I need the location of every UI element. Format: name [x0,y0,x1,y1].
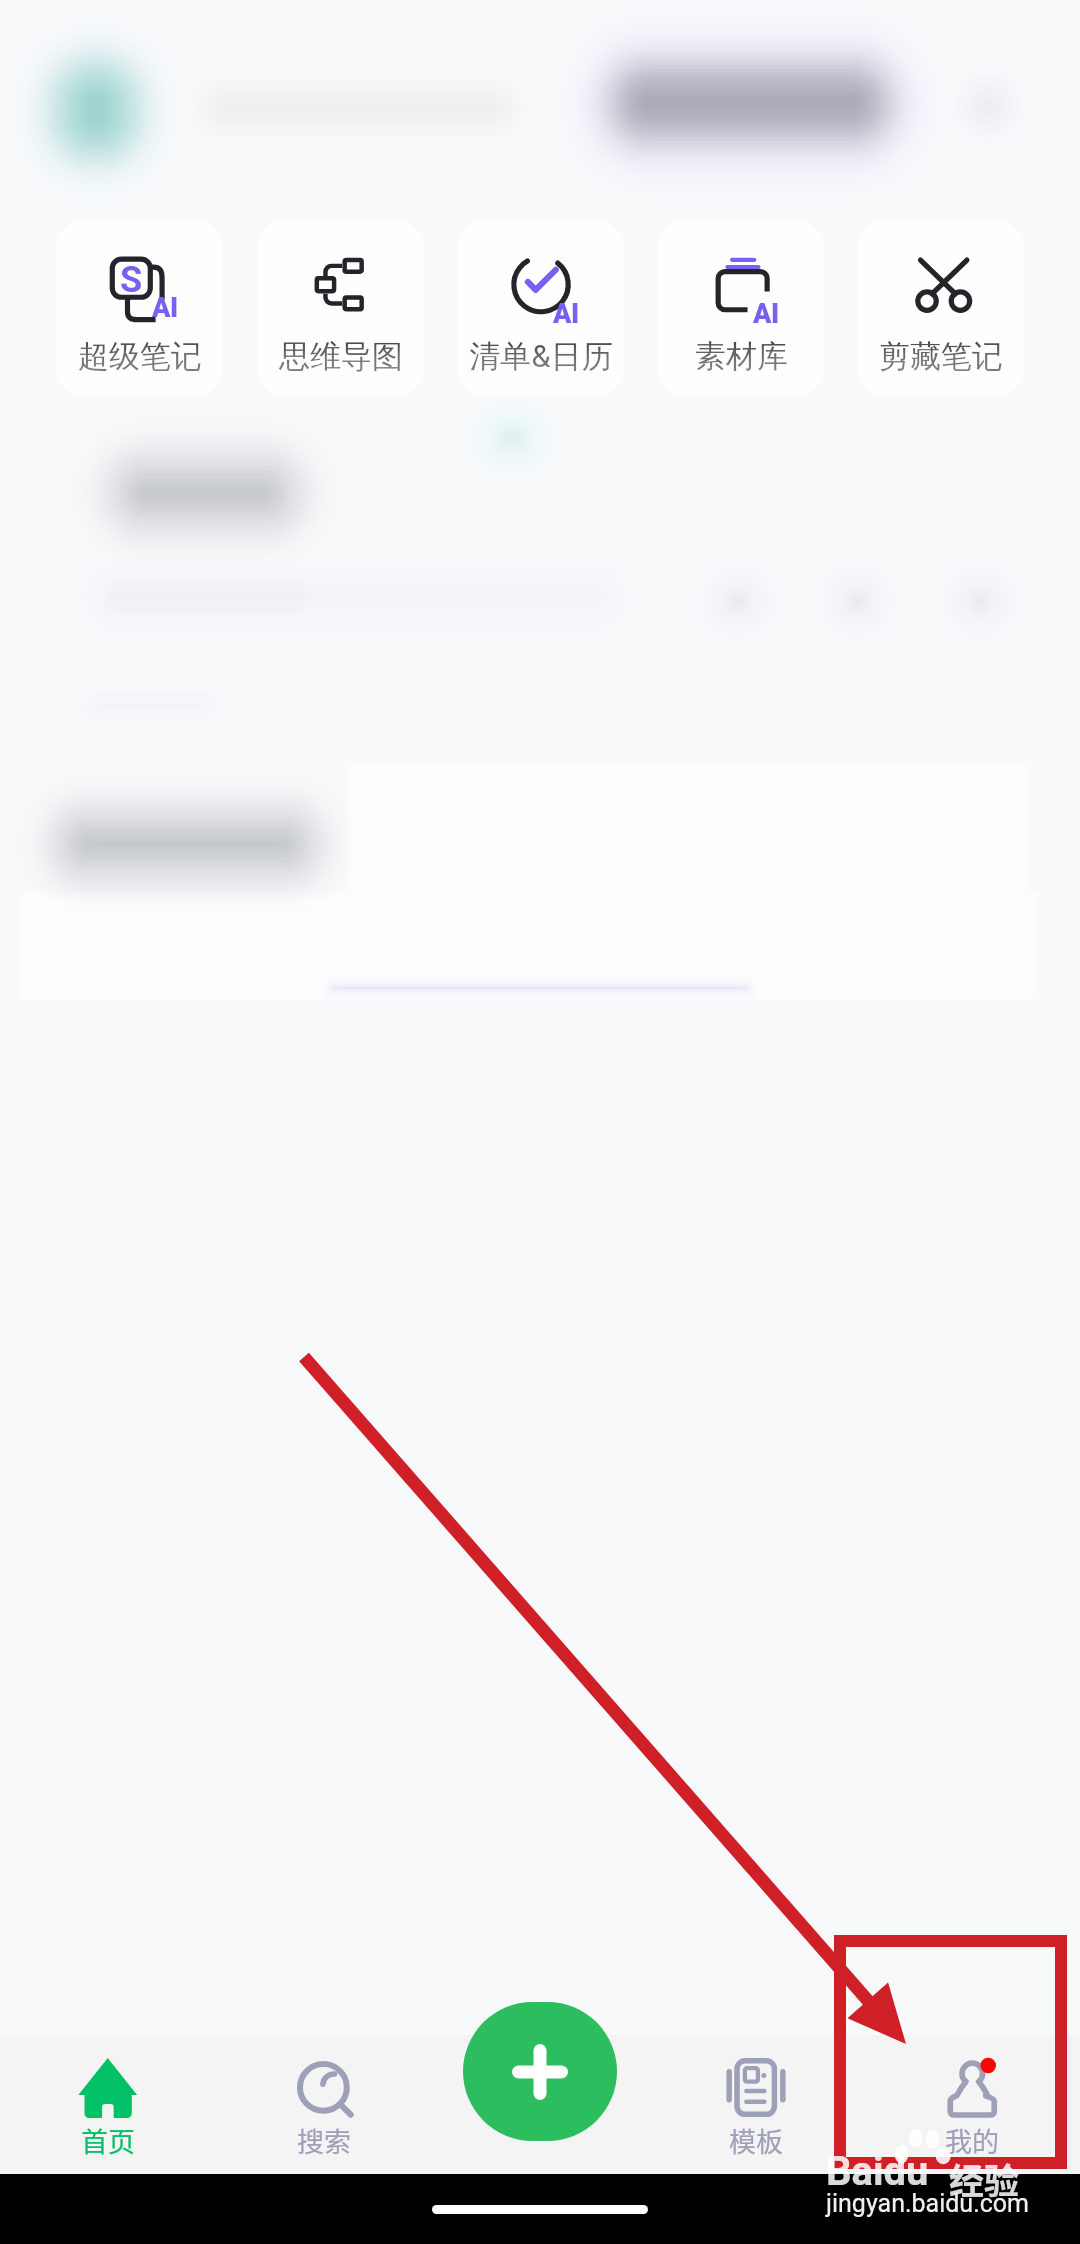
button[interactable]: 搜索 [216,2035,432,2174]
button[interactable]: 我的 [864,2035,1080,2174]
staticText: 我的 [945,2121,999,2160]
staticText: jingyan.baidu.com [826,2189,1030,2218]
staticText: AI [753,298,779,330]
staticText: Baidu [826,2148,929,2195]
staticText: 素材库 [695,337,788,376]
staticText: 思维导图 [279,337,403,376]
staticText: 超级笔记 [78,337,202,376]
button[interactable]: 思维导图 [257,220,424,396]
staticText: 模板 [729,2121,783,2160]
staticText: 搜索 [297,2121,351,2160]
staticText: AI [553,298,579,330]
button[interactable]: 首页 [0,2035,216,2174]
button[interactable]: AI [458,220,624,396]
button[interactable]: S [56,220,223,396]
staticText: 经验 [949,2153,1020,2204]
staticText: 剪藏笔记 [879,337,1003,376]
button[interactable]: 剪藏笔记 [858,220,1024,396]
button[interactable]: AI [658,220,824,396]
staticText: AI [152,292,178,324]
staticText: 首页 [81,2121,135,2160]
staticText: S [120,259,143,297]
button[interactable]: 模板 [648,2035,864,2174]
button[interactable]: 新建 [463,2002,617,2141]
staticText: 清单&日历 [469,337,613,376]
